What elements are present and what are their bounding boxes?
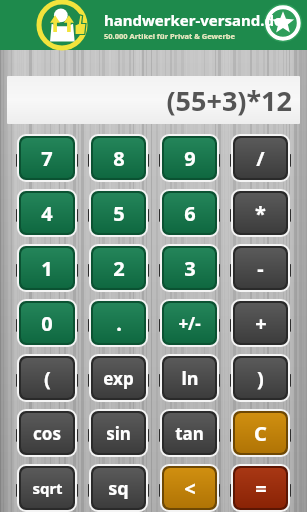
button[interactable]: C — [230, 409, 291, 457]
button[interactable]: 6 — [159, 189, 220, 237]
staticText: sin — [106, 422, 131, 445]
button[interactable]: sq — [88, 464, 149, 512]
button[interactable]: sin — [88, 409, 149, 457]
staticText: exp — [103, 367, 134, 390]
staticText: ) — [257, 365, 264, 392]
staticText: (55+3)*12 — [166, 82, 292, 119]
button[interactable]: +/- — [159, 299, 220, 347]
button[interactable]: 0 — [16, 299, 78, 347]
staticText: 0 — [41, 310, 53, 337]
button[interactable]: < — [159, 464, 220, 512]
staticText: + — [255, 310, 267, 337]
button[interactable]: * — [230, 189, 291, 237]
button[interactable]: + — [230, 299, 291, 347]
button[interactable]: 4 — [16, 189, 78, 237]
button[interactable]: 9 — [159, 134, 220, 182]
button[interactable]: 1 — [16, 244, 78, 292]
staticText: ( — [44, 365, 51, 392]
staticText: 3 — [184, 255, 196, 282]
staticText: cos — [33, 422, 61, 445]
staticText: C — [254, 420, 267, 447]
button[interactable]: 5 — [88, 189, 149, 237]
staticText: . — [116, 310, 122, 337]
staticText: 50.000 Artikel für Privat & Gewerbe — [104, 31, 235, 41]
button[interactable]: 2 — [88, 244, 149, 292]
staticText: 1 — [41, 255, 53, 282]
button[interactable]: handwerker-versand.de advertisement — [0, 0, 307, 50]
button[interactable]: sqrt — [16, 464, 78, 512]
staticText: 4 — [41, 200, 53, 227]
button[interactable]: . — [88, 299, 149, 347]
staticText: 6 — [184, 200, 196, 227]
staticText: - — [257, 255, 264, 282]
staticText: handwerker-versand.de — [104, 10, 283, 30]
staticText: = — [255, 475, 267, 502]
staticText: 5 — [113, 200, 125, 227]
button[interactable]: / — [230, 134, 291, 182]
staticText: * — [255, 200, 266, 227]
staticText: 2 — [113, 255, 125, 282]
staticText: / — [256, 145, 265, 172]
staticText: 7 — [41, 145, 53, 172]
button[interactable]: ( — [16, 354, 78, 402]
button[interactable]: ln — [159, 354, 220, 402]
button[interactable]: 7 — [16, 134, 78, 182]
button[interactable]: = — [230, 464, 291, 512]
button[interactable]: exp — [88, 354, 149, 402]
staticText: 9 — [184, 145, 196, 172]
staticText: ln — [181, 366, 199, 391]
staticText: 8 — [113, 145, 125, 172]
staticText: sq — [108, 476, 129, 501]
button[interactable]: tan — [159, 409, 220, 457]
button[interactable]: ) — [230, 354, 291, 402]
staticText: sqrt — [32, 478, 63, 498]
staticText: < — [184, 475, 196, 502]
button[interactable]: (55+3)*12 — [7, 76, 300, 124]
button[interactable]: 3 — [159, 244, 220, 292]
button[interactable]: 8 — [88, 134, 149, 182]
button[interactable]: cos — [16, 409, 78, 457]
button[interactable]: - — [230, 244, 291, 292]
staticText: +/- — [178, 312, 201, 335]
staticText: tan — [175, 422, 204, 445]
